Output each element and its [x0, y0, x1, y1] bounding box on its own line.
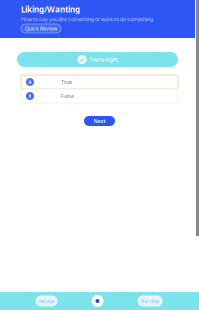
staticText: You're right — [89, 56, 117, 63]
button[interactable]: Quick Review — [21, 24, 61, 33]
button[interactable]: A — [21, 75, 178, 89]
button[interactable]: Rate App — [36, 296, 57, 306]
staticText: B — [28, 93, 31, 99]
staticText: Next — [93, 117, 105, 125]
staticText: Quick Review — [25, 25, 57, 32]
staticText: Liking/Wanting — [21, 4, 80, 15]
button[interactable]: Share App — [138, 296, 162, 306]
button[interactable]: B — [21, 89, 178, 103]
staticText: False — [61, 92, 74, 100]
staticText: Share App — [141, 298, 159, 304]
button[interactable]: Home — [91, 295, 103, 307]
staticText: How to say you like something or want to… — [21, 16, 153, 23]
staticText: A — [28, 79, 31, 85]
staticText: Rate App — [39, 298, 54, 304]
staticText: True — [61, 78, 72, 86]
button[interactable]: Next — [84, 116, 115, 126]
